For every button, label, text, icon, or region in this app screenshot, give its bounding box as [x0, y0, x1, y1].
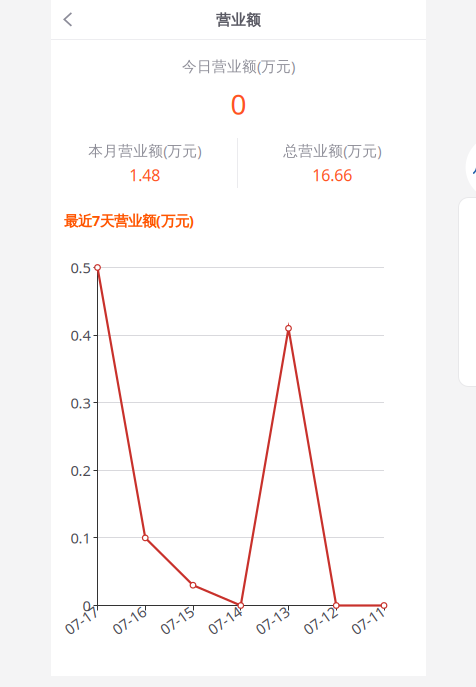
- staticText: 0.5: [70, 257, 90, 277]
- staticText: 1.48: [129, 164, 160, 186]
- staticText: 最近7天营业额(万元): [64, 211, 194, 230]
- staticText: 0.2: [70, 460, 90, 480]
- staticText: 07-13: [254, 610, 291, 630]
- staticText: 16.66: [312, 164, 352, 186]
- staticText: 营业额: [216, 11, 261, 29]
- staticText: 总营业额(万元): [283, 140, 381, 160]
- staticText: 0.1: [70, 528, 90, 548]
- staticText: 小程: [472, 163, 476, 179]
- staticText: 07-14: [206, 610, 243, 630]
- staticText: 今日营业额(万元): [182, 56, 295, 76]
- staticText: 07-16: [111, 610, 148, 630]
- staticText: 0.3: [70, 393, 90, 413]
- staticText: 0: [230, 85, 246, 123]
- staticText: 07-12: [302, 610, 339, 630]
- staticText: 本月营业额(万元): [88, 140, 201, 160]
- button[interactable]: Back: [51, 0, 91, 39]
- staticText: 07-17: [63, 610, 100, 630]
- staticText: 0: [82, 595, 90, 615]
- staticText: 0.4: [70, 325, 90, 345]
- staticText: 07-15: [158, 610, 195, 630]
- staticText: 07-11: [349, 610, 386, 630]
